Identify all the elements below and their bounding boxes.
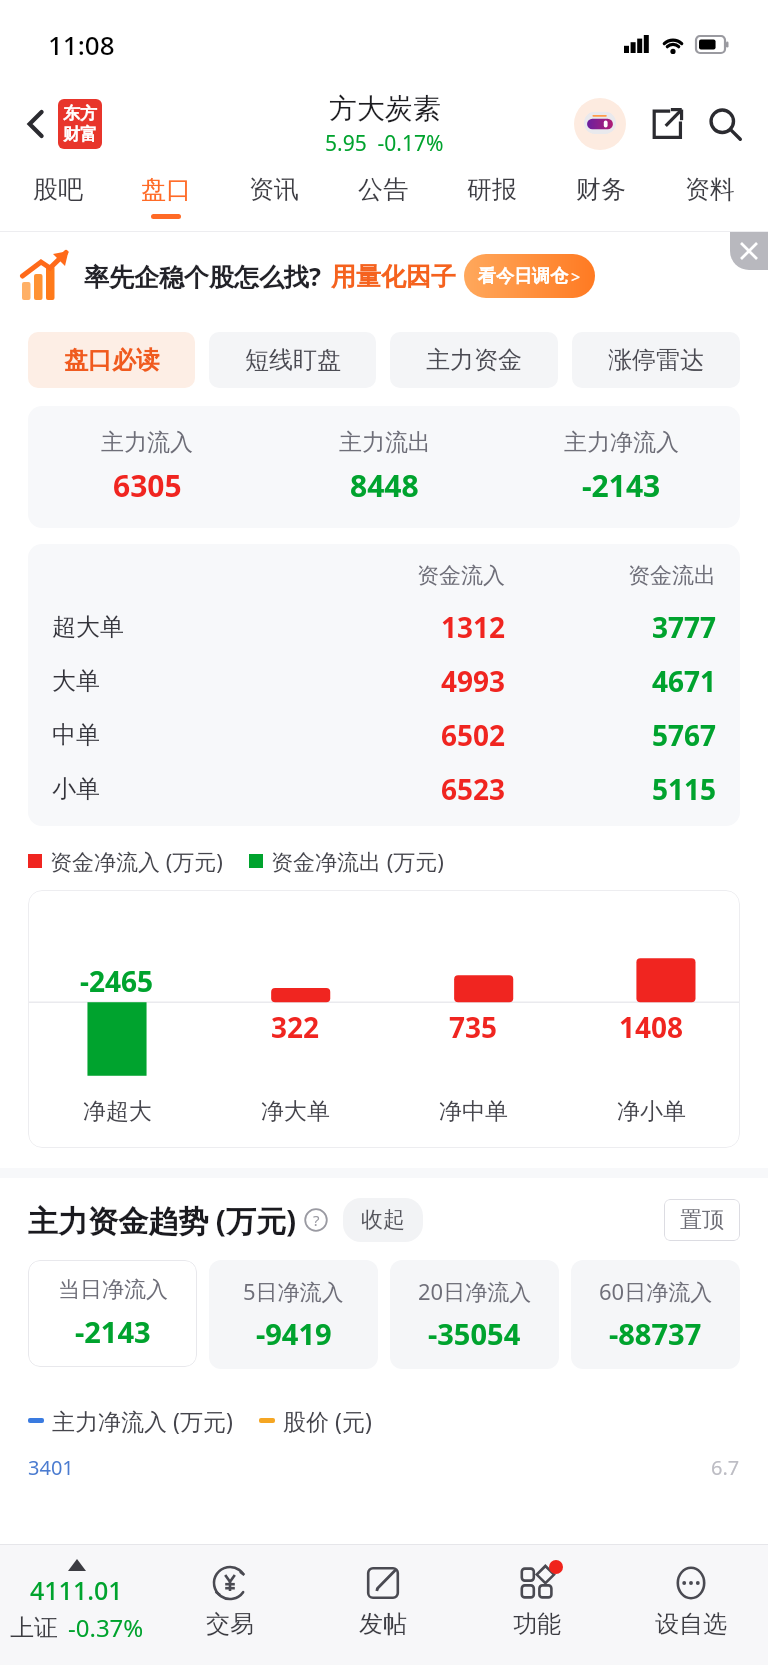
staticText: 6305 [113,465,182,506]
staticText: 资金流出 [505,562,716,590]
staticText: > [571,266,581,288]
staticText: 主力净流入 [564,428,679,457]
staticText: -9419 [256,1314,332,1353]
button[interactable]: Share [644,101,690,147]
staticText: 6.7 [711,1454,740,1481]
staticText: 4671 [505,662,716,700]
button[interactable]: Search [702,101,748,147]
staticText: 5767 [505,716,716,754]
staticText: 当日净流入 [58,1276,168,1304]
staticText: 主力流入 [101,428,193,457]
staticText: 60日净流入 [599,1276,713,1306]
staticText: 股价 (元) [283,1405,372,1436]
button[interactable]: 东方财富 [58,99,102,149]
staticText: 主力流出 [339,428,431,457]
button[interactable]: 涨停雷达 [572,332,740,388]
button[interactable]: 5日净流入 [209,1260,378,1369]
staticText: 资料 [685,174,735,205]
staticText: 11:08 [48,27,115,62]
button[interactable]: 盘口必读 [28,332,195,388]
staticText: 置顶 [680,1206,724,1234]
button[interactable]: 财务 [546,160,655,232]
button[interactable]: 20日净流入 [390,1260,559,1369]
staticText: -2143 [582,465,661,506]
staticText: 看今日调仓 [478,265,568,288]
button[interactable]: 主力流入 [28,406,740,528]
button[interactable]: 看今日调仓 [464,254,595,298]
staticText: 6502 [263,716,505,754]
staticText: 资讯 [249,174,299,205]
button[interactable]: Close [730,232,768,270]
button[interactable]: AI 助手 [574,98,626,150]
staticText: 大单 [52,666,263,696]
button[interactable]: 主力资金 [390,332,558,388]
button[interactable]: 60日净流入 [571,1260,740,1369]
staticText: 1408 [619,1008,684,1046]
button[interactable]: 率先企稳个股怎么找? [20,232,754,320]
staticText: -35054 [428,1314,521,1353]
staticText: 1312 [263,608,505,646]
staticText: 研报 [467,174,517,205]
staticText: 净中单 [439,1097,508,1126]
staticText: 公告 [358,174,408,205]
staticText: 财富 [63,124,97,145]
button[interactable]: 发帖 [306,1545,460,1665]
button[interactable]: 盘口 [112,160,220,232]
staticText: 上证 [10,1613,58,1643]
button[interactable]: 功能 [460,1545,614,1665]
button[interactable]: 公告 [328,160,437,232]
staticText: 净超大 [83,1097,152,1126]
button[interactable]: 4111.01 [0,1545,153,1665]
staticText: 盘口必读 [64,345,160,375]
staticText: -0.37% [68,1611,144,1644]
staticText: 资金净流出 (万元) [271,846,444,876]
staticText: 设自选 [655,1609,727,1639]
staticText: -2143 [75,1312,151,1351]
staticText: 交易 [206,1609,254,1639]
staticText: 3777 [505,608,716,646]
staticText: 功能 [513,1609,561,1639]
staticText: 涨停雷达 [608,345,704,375]
staticText: 主力资金 [426,345,522,375]
staticText: 735 [449,1008,498,1046]
staticText: 小单 [52,774,263,804]
staticText: 主力资金趋势 (万元) [28,1200,297,1241]
button[interactable]: 说明 [303,1207,329,1233]
button[interactable]: Back [18,106,54,142]
staticText: ? [313,1210,320,1230]
staticText: 主力净流入 (万元) [52,1405,233,1436]
staticText: 3401 [28,1454,74,1481]
button[interactable]: 设自选 [614,1545,768,1665]
button[interactable]: 收起 [343,1198,423,1242]
staticText: 322 [271,1008,320,1046]
staticText: -88737 [609,1314,702,1353]
staticText: 5115 [505,770,716,808]
button[interactable]: 资讯 [220,160,328,232]
button[interactable]: 资金流入 [28,544,740,826]
button[interactable]: 短线盯盘 [209,332,376,388]
staticText: 6523 [263,770,505,808]
button[interactable]: 置顶 [664,1199,740,1241]
button[interactable]: 当日净流入 [28,1260,197,1367]
button[interactable]: 研报 [437,160,546,232]
staticText: 股吧 [33,174,83,205]
staticText: 东方 [63,103,97,124]
staticText: 净小单 [617,1097,686,1126]
staticText: 盘口 [141,174,191,205]
staticText: 率先企稳个股怎么找? [84,259,321,293]
staticText: 20日净流入 [418,1276,532,1306]
staticText: 4993 [263,662,505,700]
staticText: 4111.01 [30,1573,123,1607]
staticText: 收起 [361,1206,405,1234]
staticText: 用量化因子 [331,261,456,292]
staticText: -2465 [80,962,154,1000]
staticText: 超大单 [52,612,263,642]
staticText: 方大炭素 [329,91,441,126]
staticText: 资金净流入 (万元) [50,846,223,876]
staticText: 资金流入 [263,562,505,590]
button[interactable]: 交易 [153,1545,306,1665]
button[interactable]: 股吧 [4,160,112,232]
staticText: 5.95 -0.17% [325,129,444,158]
button[interactable]: 资料 [655,160,764,232]
button[interactable]: -2465 [28,890,740,1148]
